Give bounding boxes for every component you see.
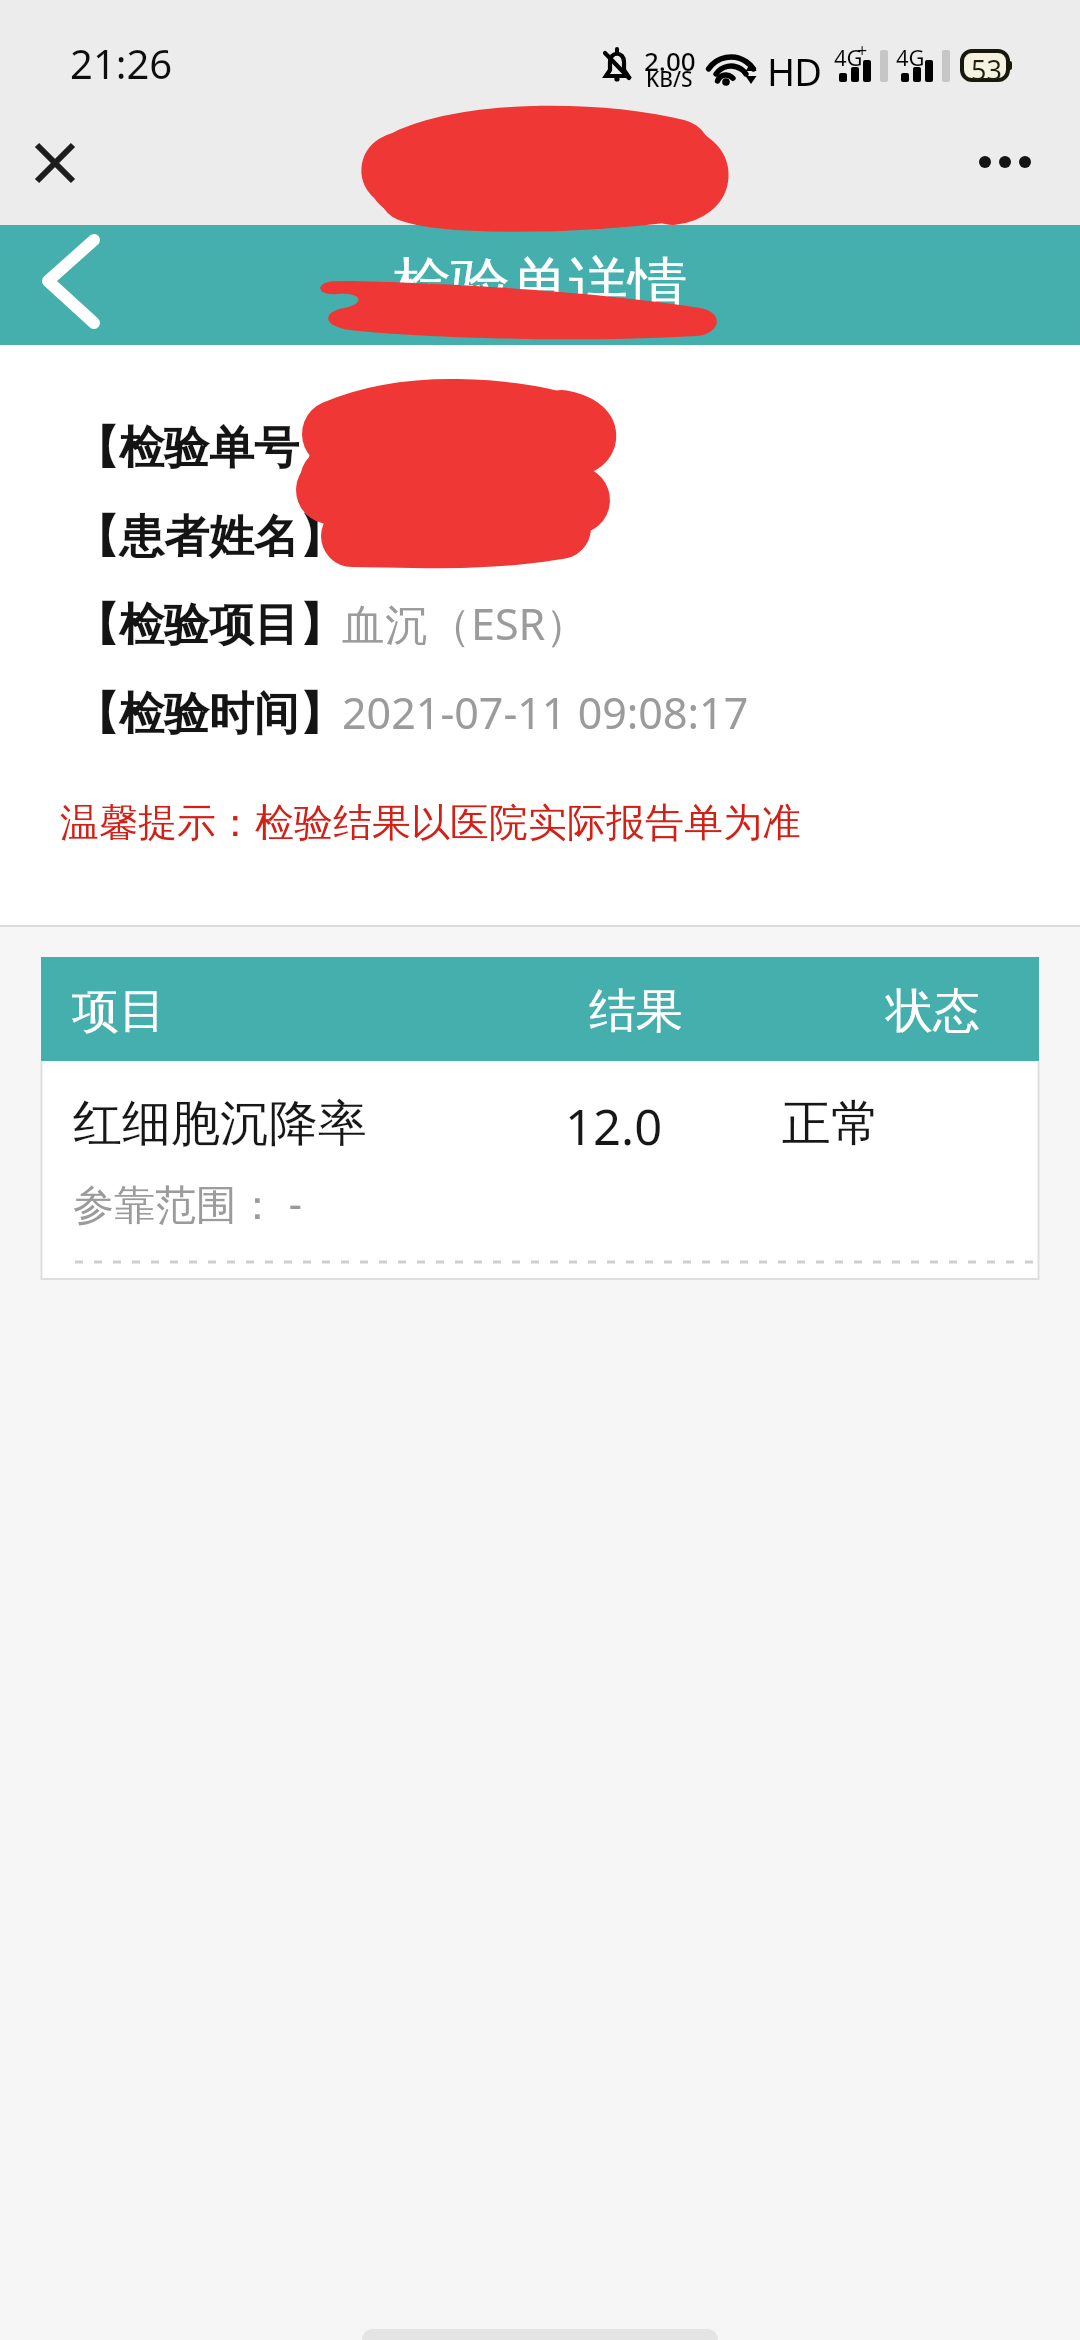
staticText: 2.00 [644, 43, 696, 78]
staticText: 【检验时间】 [74, 686, 344, 743]
button[interactable]: 红细胞沉降率 [41, 1061, 1039, 1280]
staticText: 4G [834, 42, 863, 72]
staticText: 21:26 [70, 36, 173, 90]
staticText: 参靠范围： - [73, 1175, 302, 1231]
staticText: 4G [896, 42, 925, 72]
staticText: 2021-07-11 09:08:17 [342, 683, 749, 742]
button[interactable]: More options [960, 122, 1050, 202]
staticText: 项目 [72, 982, 166, 1041]
staticText: 状态 [886, 982, 980, 1041]
staticText: 正常 [782, 1093, 880, 1155]
button[interactable]: Close [14, 122, 94, 202]
staticText: + [857, 38, 868, 63]
staticText: 红细胞沉降率 [73, 1093, 367, 1155]
staticText: 53 [971, 51, 1002, 88]
button[interactable]: Back [18, 227, 128, 345]
staticText: 血沉（ESR） [342, 594, 589, 653]
button[interactable]: 项目 [41, 957, 1039, 1061]
staticText: 【患者姓名】 [74, 509, 344, 566]
staticText: 检验单详情 [392, 248, 687, 322]
staticText: HD [767, 45, 821, 97]
staticText: KB/S [646, 65, 693, 94]
staticText: 12.0 [565, 1093, 663, 1160]
staticText: 【检验单号】 [74, 420, 344, 477]
staticText: 结果 [589, 982, 683, 1041]
staticText: 【检验项目】 [74, 597, 344, 654]
staticText: 温馨提示：检验结果以医院实际报告单为准 [60, 798, 801, 847]
